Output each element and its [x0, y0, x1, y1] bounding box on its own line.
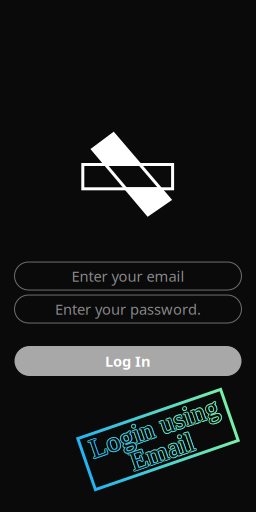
button[interactable]: Log In: [14, 346, 241, 376]
staticText: Email: [124, 436, 191, 467]
staticText: Enter your email: [71, 266, 184, 286]
staticText: Login using: [90, 411, 225, 442]
button[interactable]: Enter your email: [14, 262, 241, 290]
staticText: Enter your password.: [55, 299, 201, 319]
staticText: Log In: [105, 351, 151, 371]
button[interactable]: Login using: [81, 411, 235, 468]
button[interactable]: Enter your password.: [14, 295, 241, 323]
